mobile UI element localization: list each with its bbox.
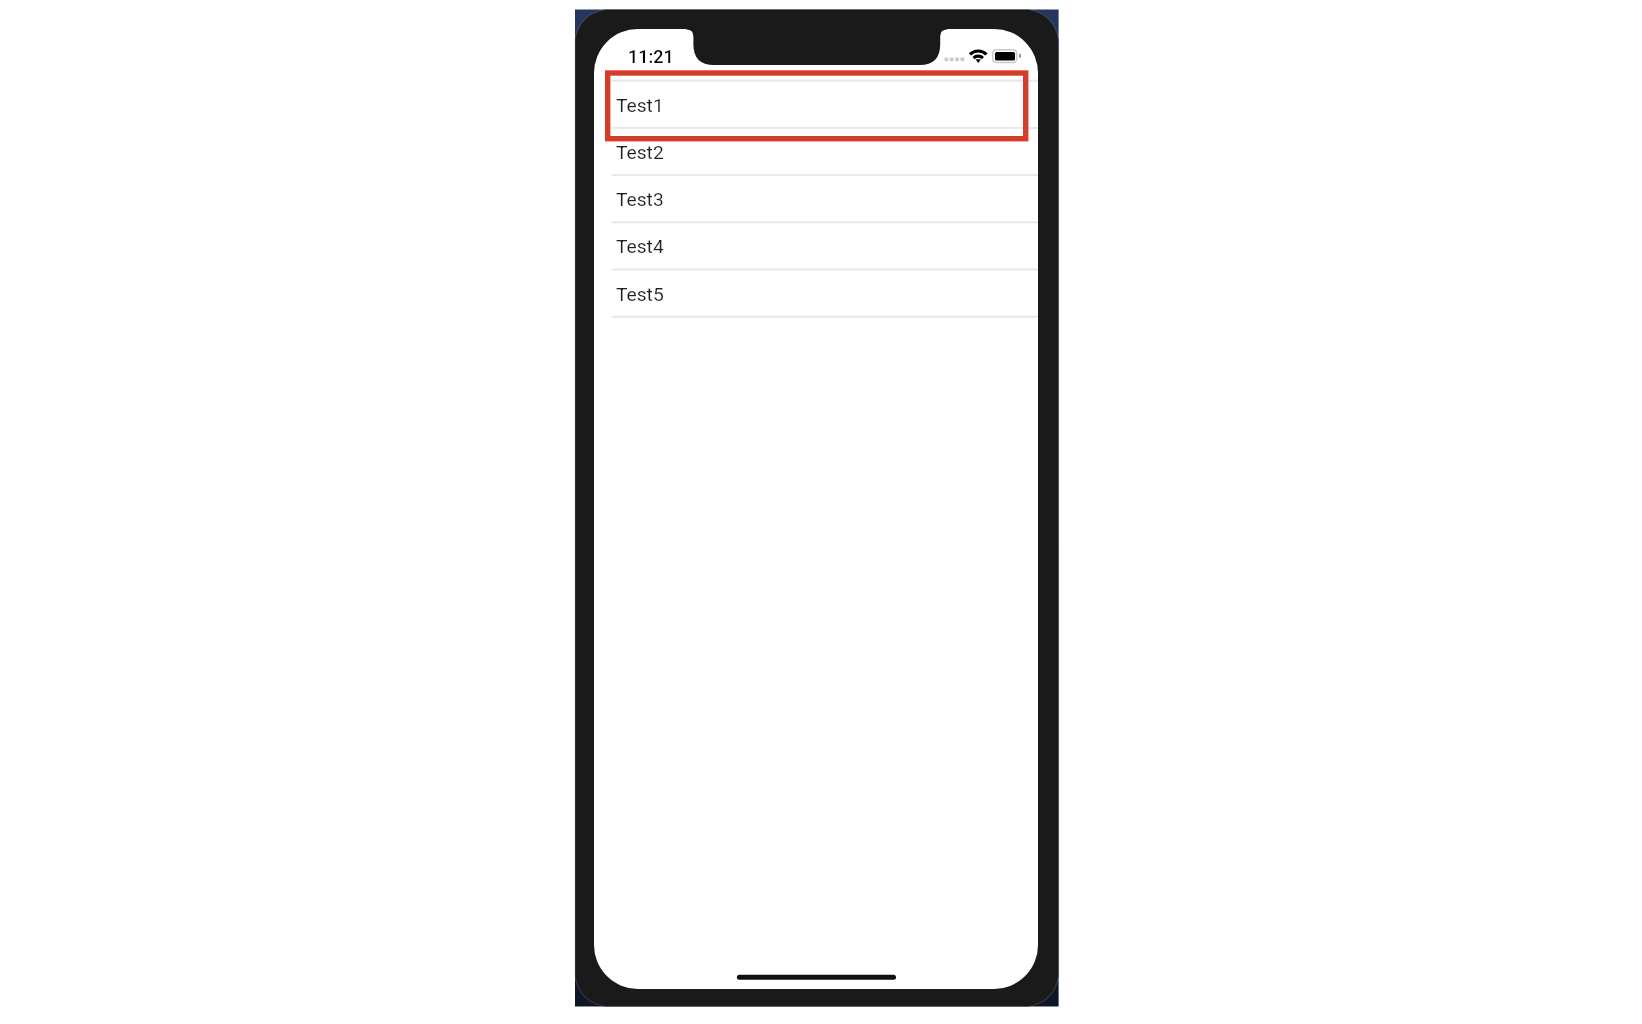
button[interactable]: Test3 (594, 174, 1038, 221)
other: Wi-Fi (966, 48, 990, 64)
button[interactable]: Test4 (594, 221, 1038, 268)
staticText: Test4 (616, 235, 664, 258)
other: Cellular signal (944, 57, 962, 62)
staticText: 11:21 (628, 46, 674, 67)
button[interactable]: Test5 (594, 269, 1038, 316)
button[interactable]: Test1 (594, 80, 1038, 127)
button[interactable]: Test2 (594, 127, 1038, 174)
staticText: Test1 (616, 94, 664, 117)
staticText: Test3 (616, 188, 664, 211)
other: Battery full (992, 49, 1021, 63)
staticText: Test5 (616, 283, 664, 306)
staticText: Test2 (616, 141, 664, 164)
